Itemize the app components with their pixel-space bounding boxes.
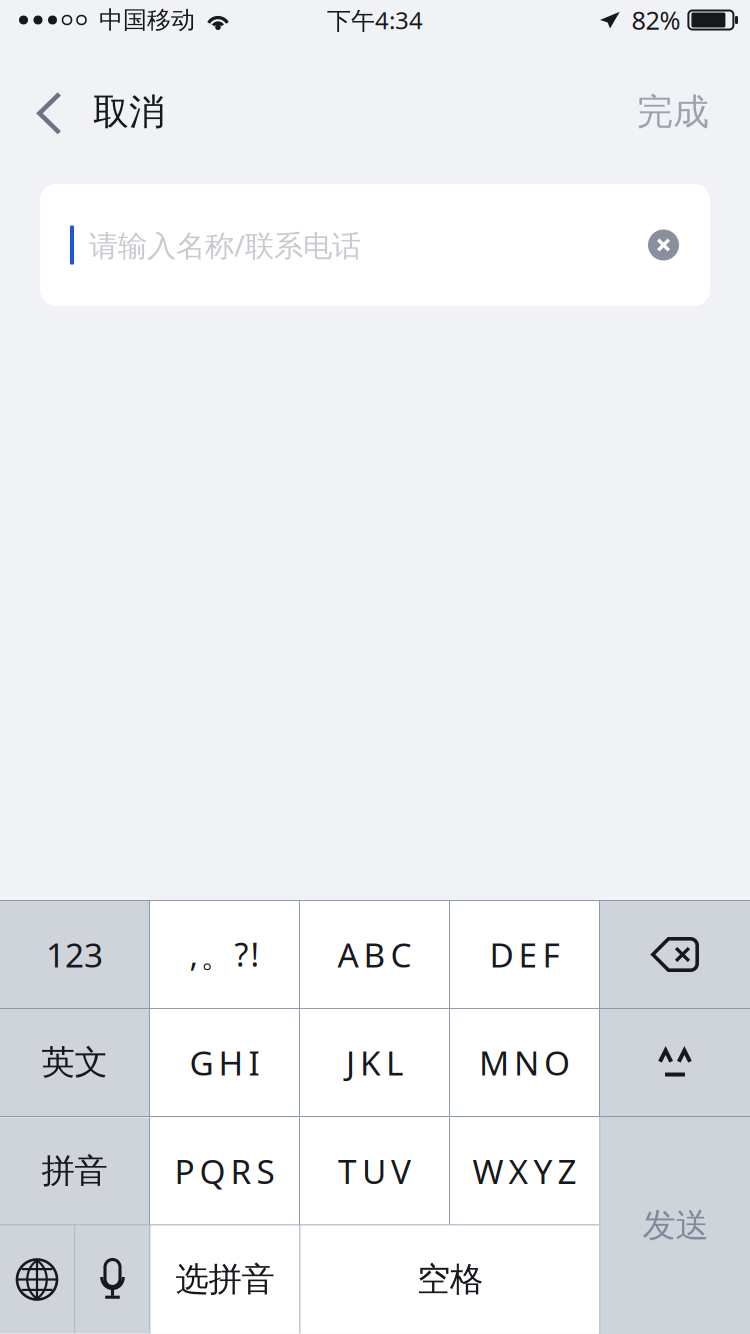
button[interactable]: DEF <box>450 901 599 1008</box>
staticText: 选拼音 <box>175 1259 274 1300</box>
staticText: 空格 <box>417 1259 483 1300</box>
button[interactable]: Delete <box>600 901 750 1008</box>
button[interactable]: 选拼音 <box>150 1225 299 1333</box>
staticText: DEF <box>489 932 559 977</box>
staticText: 82% <box>631 3 680 37</box>
button[interactable]: Emoji <box>600 1009 750 1116</box>
button[interactable]: WXYZ <box>450 1117 599 1224</box>
button[interactable]: 完成 <box>613 40 750 184</box>
button[interactable]: TUV <box>300 1117 449 1224</box>
staticText: 发送 <box>642 1205 708 1246</box>
button[interactable]: JKL <box>300 1009 449 1116</box>
button[interactable]: Switch keyboard <box>0 1225 74 1333</box>
staticText: 123 <box>46 932 103 977</box>
button[interactable]: 空格 <box>300 1225 599 1333</box>
staticText: 完成 <box>637 90 709 134</box>
staticText: MNO <box>479 1040 570 1085</box>
button[interactable]: 发送 <box>600 1117 750 1334</box>
staticText: GHI <box>189 1040 259 1085</box>
button[interactable]: GHI <box>150 1009 299 1116</box>
staticText: 取消 <box>93 90 165 134</box>
button[interactable]: Dictation <box>75 1225 149 1333</box>
staticText: JKL <box>346 1040 403 1085</box>
staticText: PQRS <box>174 1149 274 1193</box>
staticText: 请输入名称/联系电话 <box>89 225 361 264</box>
button[interactable]: MNO <box>450 1009 599 1116</box>
button[interactable]: 123 <box>0 901 149 1008</box>
button[interactable]: 拼音 <box>0 1117 149 1224</box>
button[interactable]: ABC <box>300 901 449 1008</box>
staticText: 中国移动 <box>99 5 195 35</box>
staticText: ,。?! <box>189 933 259 976</box>
staticText: ABC <box>337 932 411 977</box>
button[interactable]: Clear text <box>648 229 679 260</box>
button[interactable]: 取消 <box>0 40 189 184</box>
staticText: 下午4:34 <box>327 4 423 36</box>
staticText: TUV <box>338 1149 411 1193</box>
staticText: WXYZ <box>472 1149 576 1193</box>
staticText: 英文 <box>41 1042 107 1083</box>
staticText: 拼音 <box>41 1150 107 1191</box>
button[interactable]: 英文 <box>0 1009 149 1116</box>
button[interactable]: ,。?! <box>150 901 299 1008</box>
button[interactable]: PQRS <box>150 1117 299 1224</box>
